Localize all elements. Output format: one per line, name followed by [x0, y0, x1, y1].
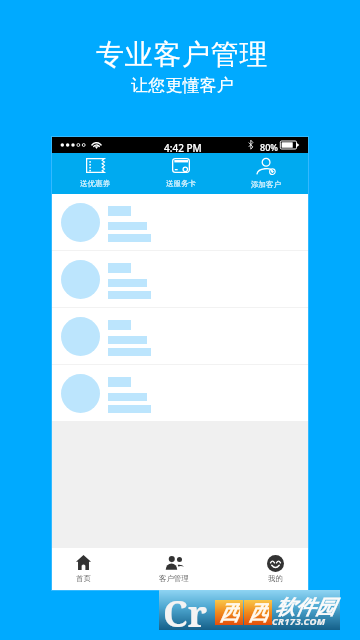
staticText: 首页: [76, 574, 91, 583]
staticText: 添加客户: [251, 180, 281, 189]
button[interactable]: 送优惠券: [52, 153, 138, 194]
button[interactable]: 客户管理: [146, 548, 202, 590]
staticText: 西: [248, 600, 269, 625]
staticText: 送服务卡: [166, 179, 196, 188]
staticText: 西: [219, 600, 240, 625]
staticText: 客户管理: [159, 574, 189, 583]
button[interactable]: [52, 194, 308, 250]
button[interactable]: 送服务卡: [138, 153, 223, 194]
button[interactable]: [52, 251, 308, 307]
staticText: 送优惠券: [80, 179, 110, 188]
button[interactable]: 我的: [247, 548, 303, 590]
staticText: 专业客户管理: [96, 37, 269, 72]
staticText: 软件园: [275, 595, 335, 620]
staticText: Cr: [163, 587, 208, 627]
button[interactable]: 首页: [55, 548, 111, 590]
staticText: 4:42 PM: [164, 141, 202, 155]
staticText: 让您更懂客户: [131, 75, 235, 96]
staticText: 我的: [268, 574, 283, 583]
button[interactable]: [52, 365, 308, 421]
staticText: 80%: [260, 141, 278, 153]
button[interactable]: [52, 308, 308, 364]
button[interactable]: 添加客户: [223, 153, 308, 194]
staticText: CR173.COM: [272, 615, 326, 628]
